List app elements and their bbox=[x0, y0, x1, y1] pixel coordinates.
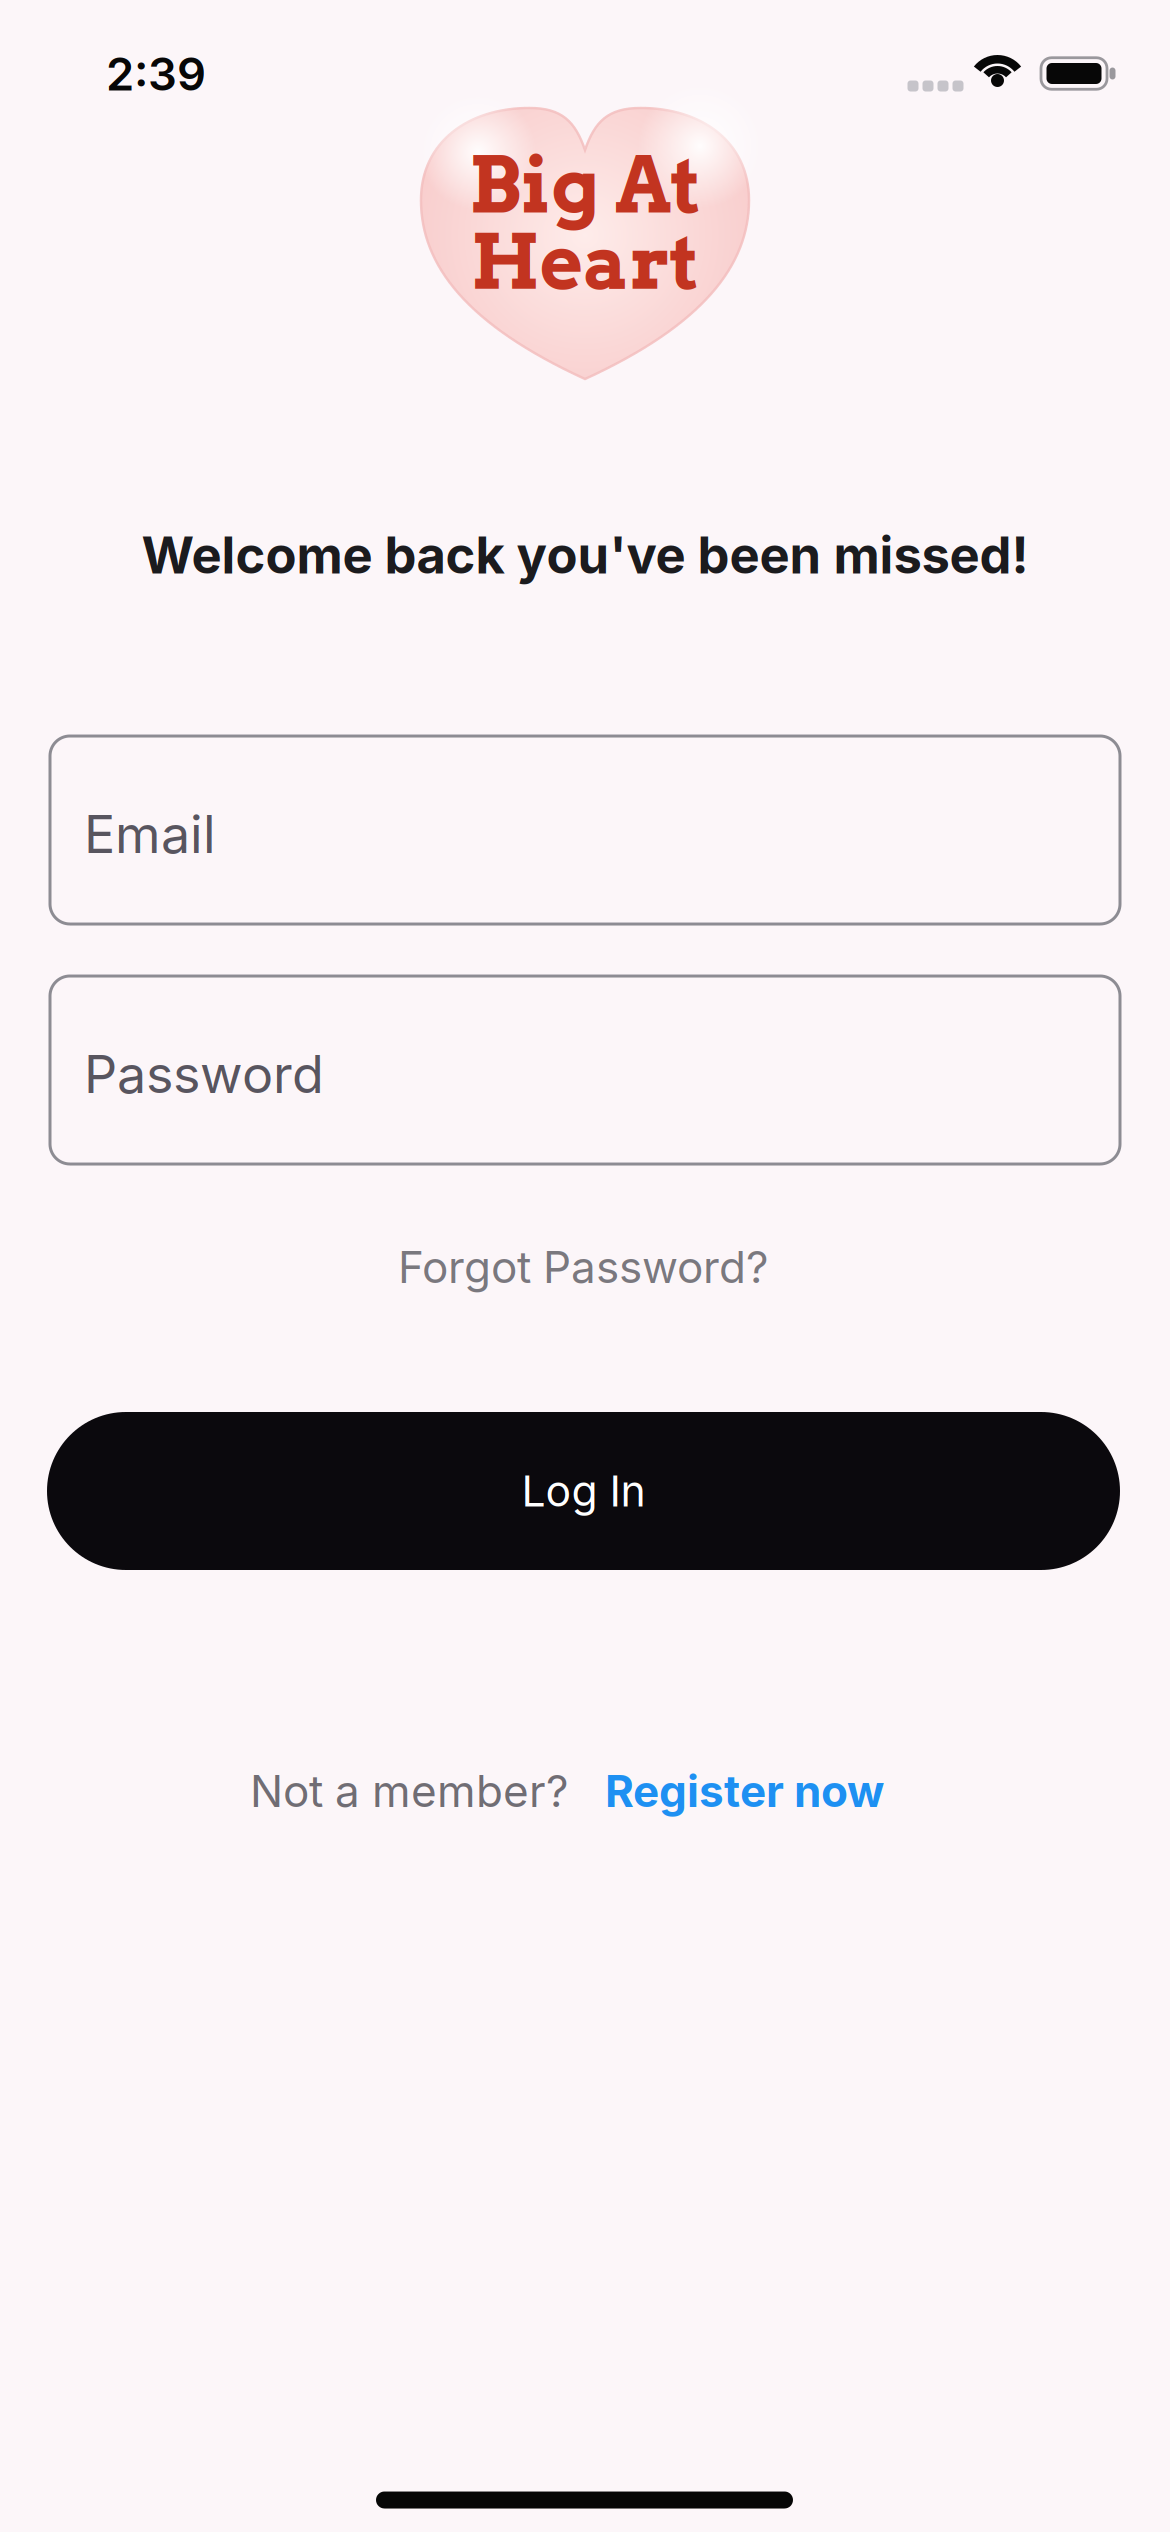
staticText: Not a member? bbox=[250, 1765, 568, 1817]
staticText: Log In bbox=[521, 1466, 645, 1516]
button[interactable]: Log In bbox=[47, 1412, 1120, 1570]
staticText: Register now bbox=[605, 1765, 884, 1817]
staticText: Welcome back you've been missed! bbox=[141, 525, 1028, 585]
button[interactable]: Password bbox=[50, 976, 1120, 1164]
staticText: Email bbox=[84, 803, 216, 865]
button[interactable]: Email bbox=[50, 736, 1120, 924]
button[interactable]: Register now bbox=[605, 1765, 884, 1817]
button[interactable]: Forgot Password? bbox=[398, 1241, 768, 1293]
staticText: Password bbox=[84, 1043, 324, 1105]
staticText: Big At bbox=[469, 138, 701, 232]
staticText: Forgot Password? bbox=[398, 1241, 768, 1293]
staticText: 2:39 bbox=[106, 47, 206, 101]
staticText: Heart bbox=[471, 217, 699, 307]
